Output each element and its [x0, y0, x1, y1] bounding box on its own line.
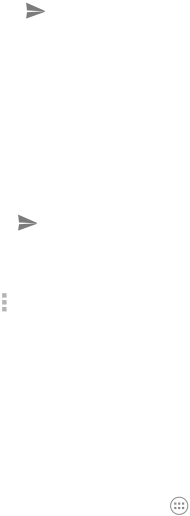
button[interactable]: More options — [2, 293, 7, 311]
button[interactable]: Send — [26, 3, 45, 19]
button[interactable]: Apps — [171, 497, 188, 514]
button[interactable]: Send — [18, 215, 37, 231]
